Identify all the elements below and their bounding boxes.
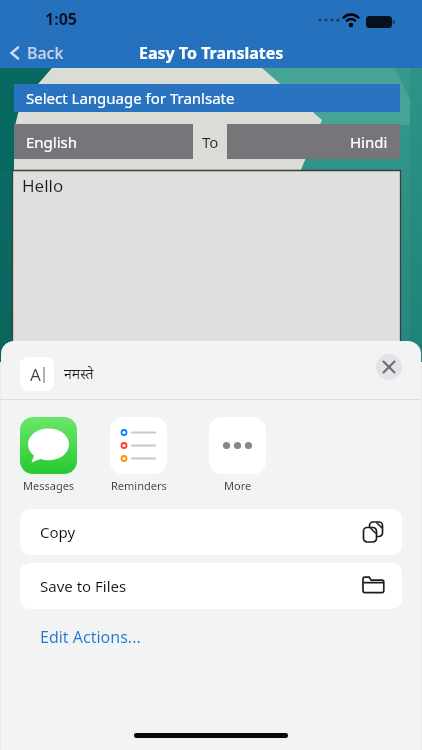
button[interactable]: Select Language for Tranlsate	[14, 84, 400, 112]
staticText: Easy To Translates	[139, 42, 284, 64]
staticText: To	[202, 132, 219, 152]
staticText: नमस्ते	[64, 364, 94, 383]
button[interactable]: Save to Files	[20, 563, 402, 609]
button[interactable]: Copy	[20, 509, 402, 555]
button[interactable]: Hindi	[227, 124, 400, 159]
button[interactable]	[110, 417, 167, 474]
staticText: Back	[27, 42, 64, 64]
staticText: Select Language for Tranlsate	[26, 88, 235, 108]
staticText: Save to Files	[40, 576, 127, 596]
button[interactable]	[20, 417, 77, 474]
button[interactable]: English	[14, 124, 193, 159]
staticText: 1:05	[45, 8, 77, 30]
staticText: A	[30, 363, 41, 386]
staticText: Hindi	[350, 132, 388, 152]
staticText: Hello	[22, 174, 64, 197]
staticText: English	[26, 132, 78, 152]
button[interactable]: Back	[8, 42, 64, 64]
staticText: Reminders	[111, 478, 167, 493]
staticText: More	[224, 478, 252, 493]
staticText: Messages	[23, 478, 75, 493]
button[interactable]	[376, 354, 402, 380]
button[interactable]: Edit Actions...	[40, 626, 141, 648]
button[interactable]	[209, 417, 266, 474]
staticText: Copy	[40, 522, 76, 542]
